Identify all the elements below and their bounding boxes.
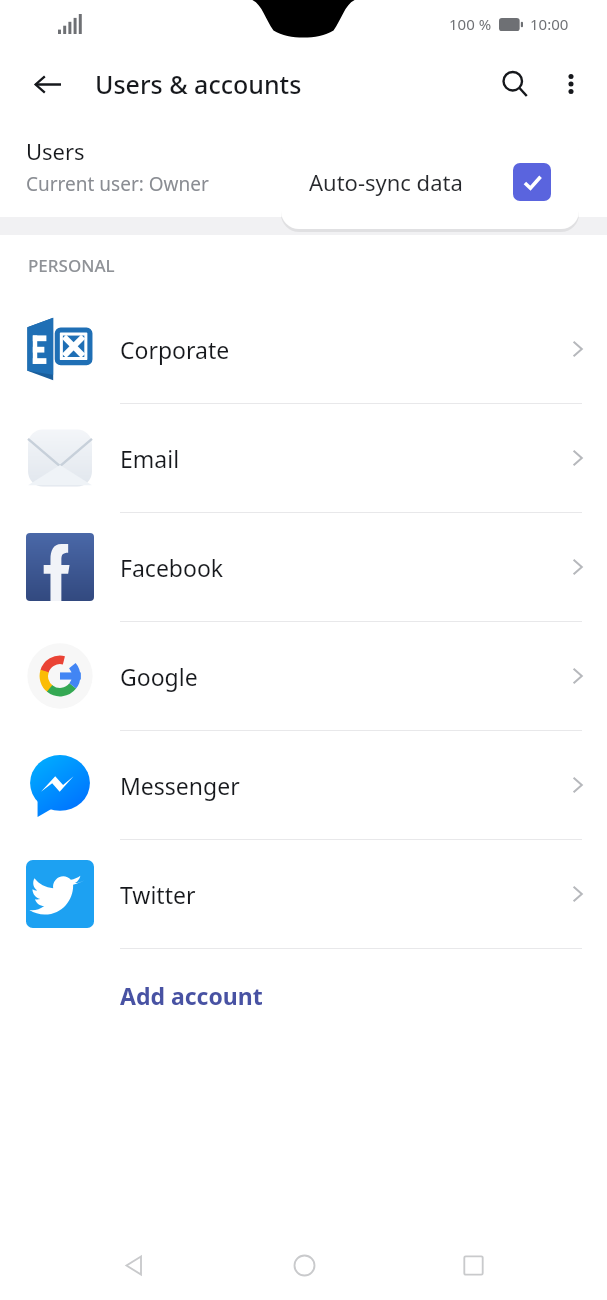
staticText: Google — [120, 661, 547, 692]
staticText: Current user: Owner — [26, 171, 209, 197]
button[interactable]: Recent apps — [438, 1230, 508, 1300]
button[interactable]: Back — [20, 57, 74, 111]
button[interactable]: More options — [543, 56, 599, 112]
button[interactable]: Users — [0, 120, 607, 217]
staticText: Facebook — [120, 552, 547, 583]
staticText: Add account — [120, 980, 263, 1011]
staticText: 10:00 — [530, 14, 569, 34]
button[interactable]: Back — [99, 1230, 169, 1300]
button[interactable]: Home — [269, 1230, 339, 1300]
staticText: 100 % — [449, 14, 492, 34]
button[interactable]: Corporate — [0, 295, 607, 403]
staticText: Email — [120, 443, 547, 474]
staticText: Auto-sync data — [309, 167, 513, 197]
staticText: Users & accounts — [95, 67, 302, 101]
staticText: Users — [26, 136, 85, 166]
button[interactable]: Google — [0, 622, 607, 730]
staticText: Corporate — [120, 334, 547, 365]
staticText: Twitter — [120, 879, 547, 910]
button[interactable]: Auto-sync data — [281, 134, 579, 229]
staticText: PERSONAL — [28, 254, 115, 277]
button[interactable]: Twitter — [0, 840, 607, 948]
button[interactable]: Facebook — [0, 513, 607, 621]
button[interactable]: Search — [487, 56, 543, 112]
staticText: Messenger — [120, 770, 547, 801]
button[interactable]: Email — [0, 404, 607, 512]
button[interactable]: Add account — [0, 949, 607, 1041]
button[interactable]: Messenger — [0, 731, 607, 839]
